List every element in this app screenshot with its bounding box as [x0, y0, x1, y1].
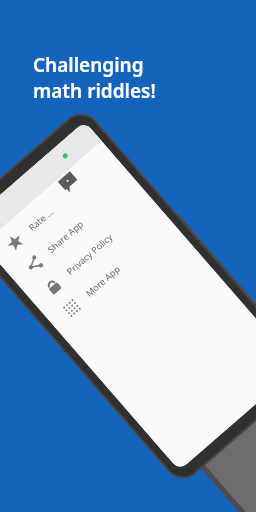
other: Notifications	[58, 171, 80, 194]
button[interactable]: More App	[56, 217, 174, 326]
button[interactable]: Rate ...	[0, 152, 117, 260]
button[interactable]: Privacy Policy	[37, 196, 155, 304]
staticText: Rate ...	[26, 205, 55, 233]
staticText: Next	[207, 430, 235, 457]
button[interactable]: Next	[58, 206, 256, 512]
staticText: Share App	[45, 217, 86, 255]
button[interactable]: Rate ...	[0, 105, 256, 486]
staticText: More App	[83, 262, 122, 299]
staticText: Privacy Policy	[64, 230, 115, 277]
button[interactable]: Share App	[17, 174, 136, 282]
staticText: Challenging math riddles!	[33, 52, 156, 103]
